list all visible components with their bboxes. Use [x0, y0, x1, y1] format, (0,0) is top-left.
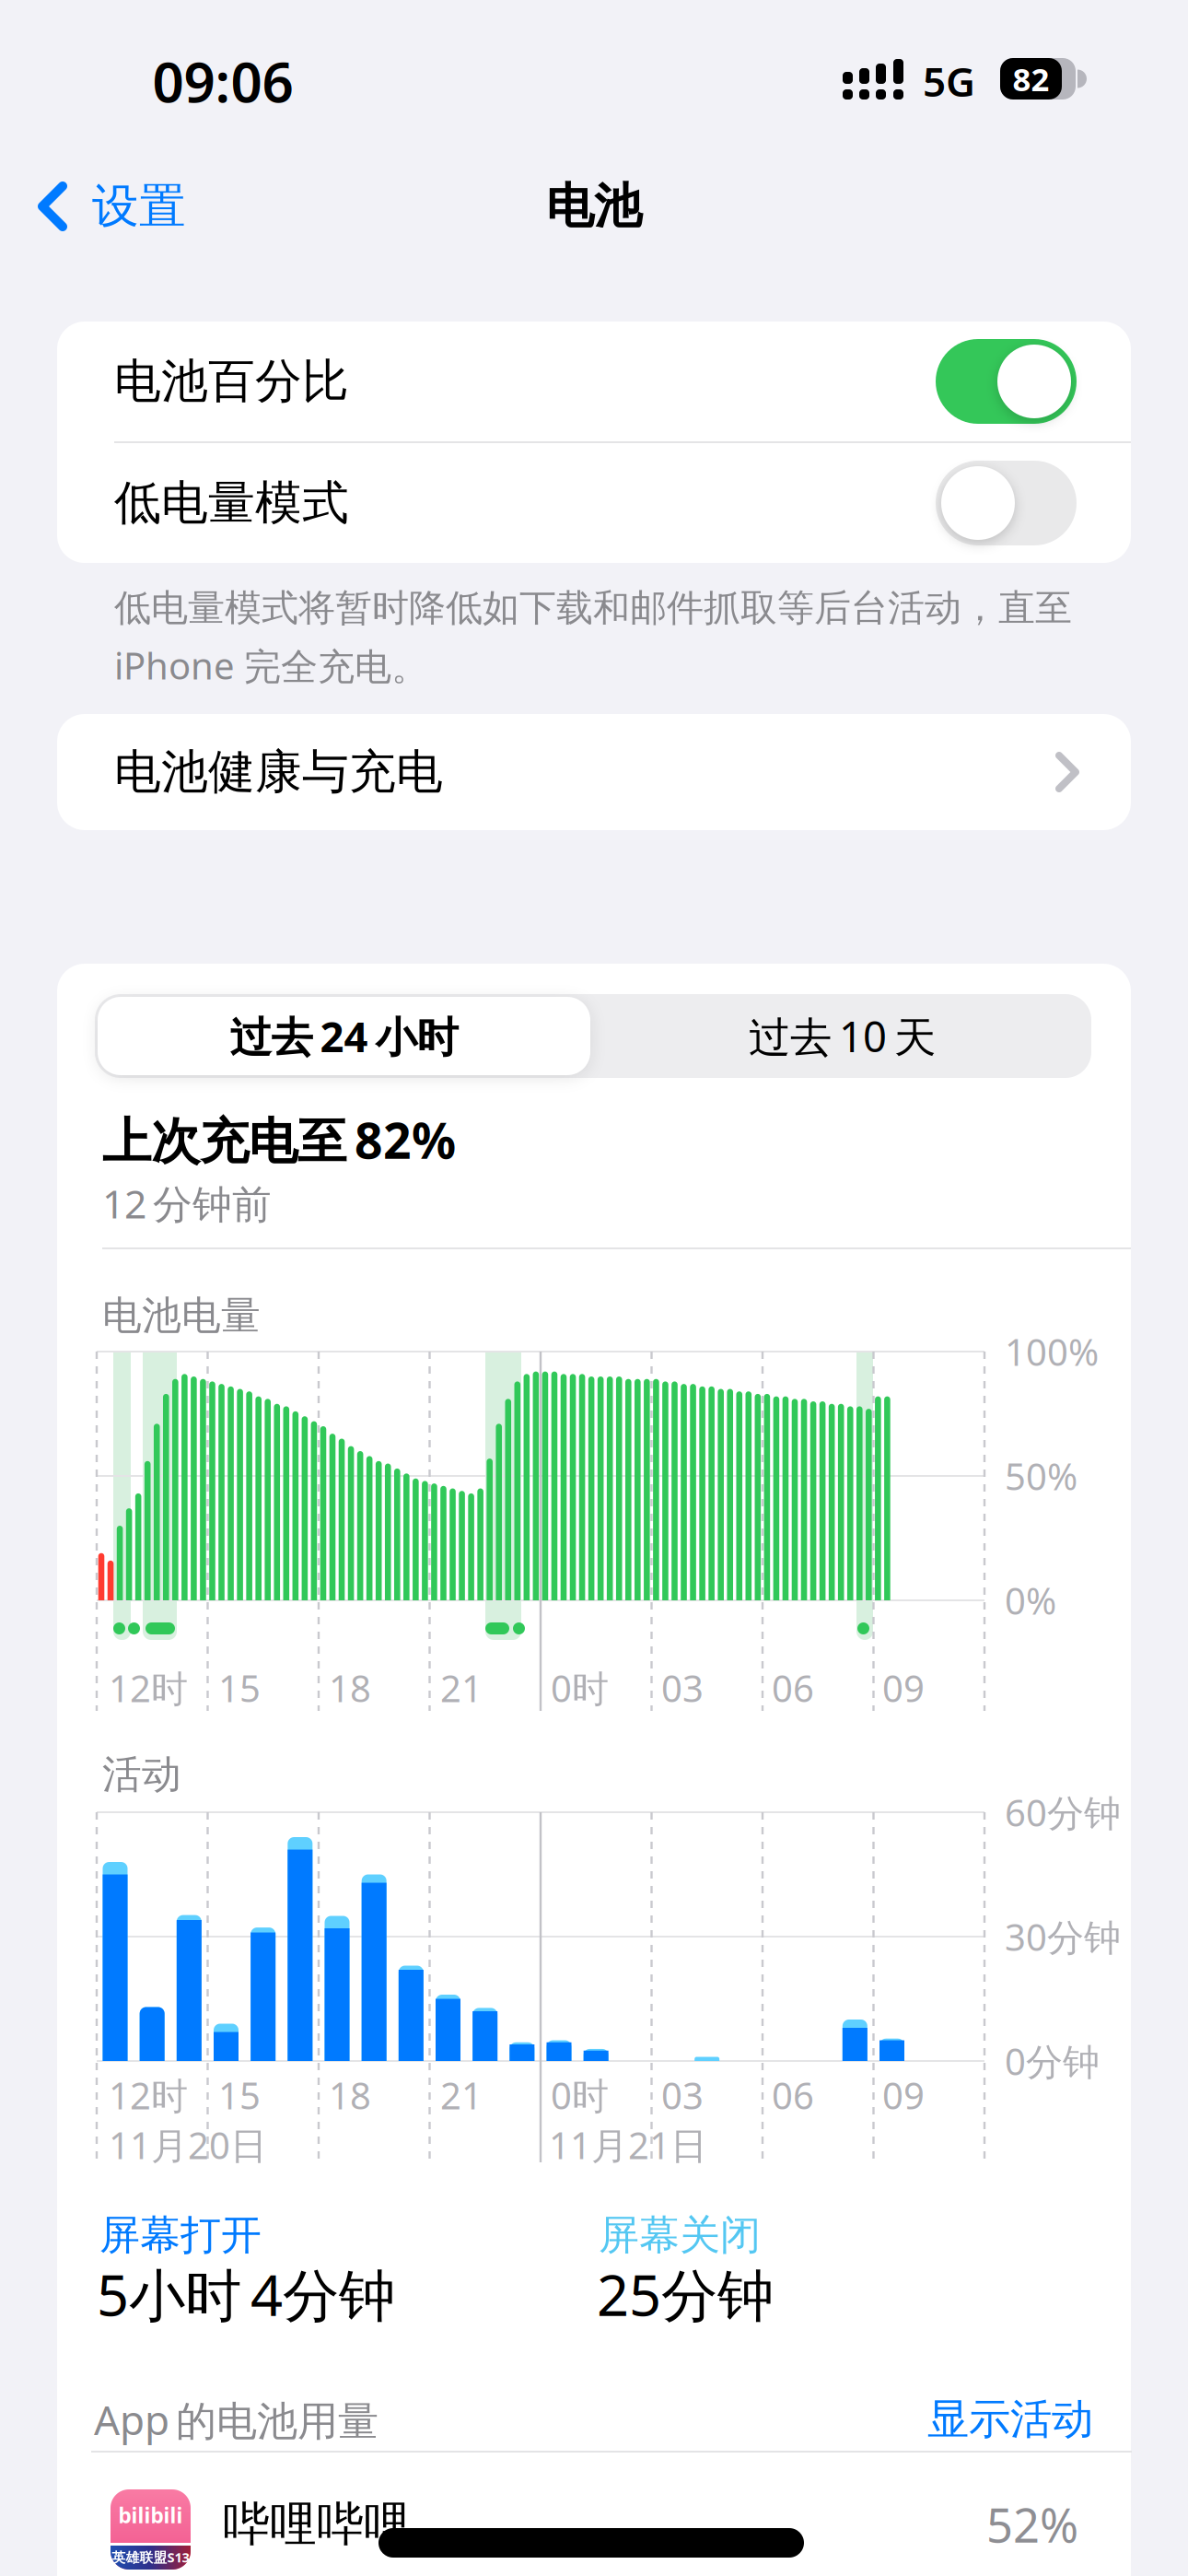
- staticText: 0时: [551, 2071, 609, 2119]
- staticText: 03: [661, 1663, 704, 1712]
- staticText: 低电量模式: [114, 474, 349, 532]
- staticText: 50%: [1005, 1451, 1077, 1500]
- staticText: 52%: [986, 2493, 1078, 2555]
- staticText: 屏幕打开: [99, 2210, 262, 2260]
- staticText: 电池: [546, 177, 642, 236]
- staticText: 09: [882, 1663, 925, 1712]
- staticText: bilibili: [118, 2501, 183, 2529]
- staticText: 18: [329, 2071, 371, 2119]
- staticText: 82: [1013, 58, 1049, 100]
- staticText: 0时: [551, 1663, 609, 1712]
- button[interactable]: 电池健康与充电: [57, 714, 1131, 830]
- staticText: 06: [772, 2071, 814, 2119]
- staticText: 电池健康与充电: [114, 743, 443, 801]
- staticText: 显示活动: [927, 2394, 1093, 2445]
- staticText: 设置: [92, 178, 186, 235]
- staticText: 15: [218, 2071, 261, 2119]
- staticText: 5小时 4分钟: [97, 2257, 395, 2332]
- staticText: 哔哩哔哩: [223, 2496, 411, 2553]
- staticText: 0%: [1005, 1576, 1056, 1625]
- staticText: iPhone 完全充电。: [114, 641, 428, 690]
- staticText: 60分钟: [1005, 1788, 1121, 1837]
- button[interactable]: bilibili: [57, 2482, 1131, 2572]
- staticText: App 的电池用量: [94, 2392, 379, 2446]
- staticText: 21: [440, 2071, 483, 2119]
- staticText: 21: [440, 1663, 483, 1712]
- button[interactable]: 过去 10 天: [593, 994, 1091, 1078]
- staticText: 上次充电至 82%: [102, 1107, 456, 1172]
- staticText: 过去 24 小时: [230, 1008, 458, 1064]
- staticText: 15: [218, 1663, 261, 1712]
- staticText: 12时: [109, 1663, 188, 1712]
- staticText: 11月21日: [549, 2120, 707, 2169]
- staticText: 03: [661, 2071, 704, 2119]
- button[interactable]: 显示活动: [817, 2395, 1093, 2443]
- button[interactable]: 过去 24 小时: [98, 997, 590, 1075]
- staticText: 屏幕关闭: [599, 2210, 761, 2260]
- staticText: 电池百分比: [114, 353, 349, 410]
- button[interactable]: 低电量模式: [57, 443, 1131, 563]
- staticText: 30分钟: [1005, 1912, 1121, 1961]
- staticText: 活动: [102, 1750, 181, 1799]
- staticText: 过去 10 天: [749, 1008, 936, 1064]
- staticText: 25分钟: [597, 2257, 774, 2332]
- button[interactable]: 设置: [37, 177, 186, 236]
- staticText: 12 分钟前: [102, 1177, 272, 1229]
- staticText: 英雄联盟S13: [112, 2548, 189, 2566]
- staticText: 11月20日: [109, 2120, 267, 2169]
- staticText: 0分钟: [1005, 2036, 1100, 2085]
- button[interactable]: 电池百分比: [57, 322, 1131, 441]
- staticText: 09: [882, 2071, 925, 2119]
- staticText: 低电量模式将暂时降低如下载和邮件抓取等后台活动，直至: [114, 585, 1072, 631]
- staticText: 18: [329, 1663, 371, 1712]
- staticText: 5G: [923, 54, 975, 108]
- staticText: 100%: [1005, 1327, 1099, 1376]
- staticText: 09:06: [152, 44, 293, 118]
- staticText: 12时: [109, 2071, 188, 2119]
- staticText: 06: [772, 1663, 814, 1712]
- staticText: 电池电量: [102, 1292, 261, 1340]
